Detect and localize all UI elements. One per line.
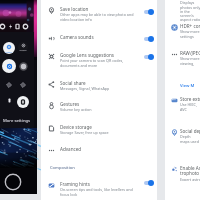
button[interactable]: PHOTO: [18, 42, 28, 52]
staticText: Gestures: [60, 101, 80, 107]
button[interactable]: Store extras: [165, 96, 200, 112]
staticText: Use HEIC, AVC formats if supported: [180, 102, 200, 112]
button[interactable]: Enable Astrophotography: [165, 165, 200, 181]
button[interactable]: Quick setting: [22, 23, 29, 30]
button[interactable]: Save location: [41, 6, 157, 22]
button[interactable]: Framing hints: [41, 181, 157, 197]
staticText: Framing hints: [60, 181, 90, 187]
button[interactable]: NIGHT: [3, 42, 15, 54]
button[interactable]: Camera option: [2, 59, 16, 73]
staticText: Messages, Signal, WhatsApp: [60, 86, 110, 91]
button[interactable]: Toggle: [143, 52, 154, 61]
staticText: Displays photos only in the screen's asp…: [180, 0, 200, 22]
button[interactable]: Aspect ratio: [5, 81, 13, 89]
staticText: Other apps may be able to view photo and…: [60, 12, 136, 22]
button[interactable]: More settings: [3, 118, 31, 124]
staticText: On-screen tips and tools, like levellers…: [60, 187, 136, 197]
staticText: Device storage: [60, 124, 92, 130]
staticText: Enable Astrophotography: [180, 165, 200, 177]
staticText: Composition: [50, 165, 75, 171]
staticText: HDR+ control: [180, 23, 200, 29]
staticText: Expert astrophotography: [180, 177, 200, 181]
button[interactable]: Social depth: [165, 128, 200, 144]
button[interactable]: RAW/JPEG: [165, 50, 200, 66]
button[interactable]: Toggle: [143, 34, 154, 43]
button[interactable]: Shutter: [4, 173, 22, 191]
button[interactable]: Social share: [41, 80, 157, 96]
button[interactable]: Screen flash: [7, 98, 12, 103]
staticText: Storage Saver, free up space: [60, 130, 109, 135]
staticText: Depth maps used by apps turned on to pro…: [180, 134, 200, 144]
button[interactable]: HDR+ control: [165, 23, 200, 39]
staticText: Google Lens suggestions: [60, 52, 115, 58]
staticText: Show more settings: [180, 29, 200, 39]
staticText: NIGHT: [5, 50, 13, 53]
staticText: More settings: [3, 118, 31, 124]
button[interactable]: Quick setting: [7, 23, 14, 30]
staticText: RAW/JPEG: [180, 50, 200, 56]
button[interactable]: Toggle: [143, 7, 154, 16]
staticText: Advanced: [60, 146, 82, 152]
button[interactable]: Google Lens suggestions: [41, 52, 157, 68]
staticText: Show more viewing, more detail, more opt…: [180, 56, 200, 66]
staticText: Point your camera to scan QR codes, docu…: [60, 58, 136, 68]
staticText: View M: [180, 83, 195, 89]
button[interactable]: Advanced: [41, 146, 157, 156]
staticText: Save location: [60, 6, 89, 12]
staticText: Volume key action: [60, 107, 92, 112]
button[interactable]: Gestures: [41, 101, 157, 117]
button[interactable]: Timer: [19, 81, 27, 89]
button[interactable]: Camera option: [17, 96, 29, 108]
button[interactable]: Quick setting: [0, 23, 6, 30]
staticText: Social share: [60, 80, 86, 86]
staticText: PHOTO: [19, 48, 28, 51]
button[interactable]: Device storage: [41, 124, 157, 140]
staticText: Store extras: [180, 96, 200, 102]
staticText: Camera sounds: [60, 34, 94, 40]
button[interactable]: Quick setting: [14, 23, 21, 30]
button[interactable]: Toggle: [143, 178, 154, 187]
button[interactable]: View M: [180, 83, 195, 89]
staticText: Social depth: [180, 128, 200, 134]
button[interactable]: Camera sounds: [41, 34, 157, 44]
